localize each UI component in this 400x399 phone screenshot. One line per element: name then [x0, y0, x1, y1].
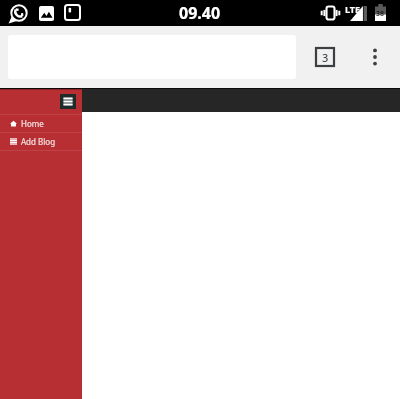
- staticText: Add Blog: [21, 136, 56, 147]
- staticText: 38: [376, 9, 385, 19]
- staticText: LTE: [345, 3, 361, 15]
- staticText: 09.40: [179, 2, 221, 24]
- button[interactable]: Toggle menu: [60, 94, 76, 109]
- button[interactable]: Tabs: [316, 48, 334, 66]
- staticText: Home: [21, 118, 44, 129]
- button[interactable]: Home: [0, 115, 82, 132]
- button[interactable]: Add Blog: [0, 133, 82, 150]
- button[interactable]: More options: [366, 46, 384, 68]
- staticText: 3: [322, 50, 329, 65]
